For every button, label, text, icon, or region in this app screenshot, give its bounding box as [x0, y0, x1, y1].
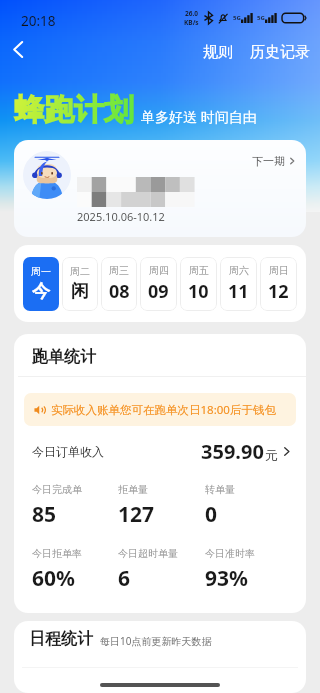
- staticText: KB/s: [184, 18, 199, 27]
- staticText: 拒单量: [118, 483, 148, 496]
- button[interactable]: 2025.10.06-10.12: [14, 140, 306, 237]
- button[interactable]: 历史记录: [246, 38, 314, 67]
- button[interactable]: 今日订单收入: [14, 435, 306, 468]
- staticText: 转单量: [205, 483, 235, 496]
- staticText: 5G: [233, 14, 241, 22]
- button[interactable]: 周五: [180, 257, 217, 311]
- staticText: 周六: [229, 264, 249, 277]
- button[interactable]: 下一期: [248, 150, 300, 172]
- staticText: 今日订单收入: [32, 444, 104, 459]
- staticText: 2025.10.06-10.12: [77, 209, 165, 224]
- button[interactable]: Back: [2, 33, 34, 65]
- staticText: 93%: [205, 564, 248, 593]
- staticText: 单多好送 时间自由: [141, 107, 257, 126]
- staticText: 闲: [71, 280, 89, 303]
- staticText: 日程统计: [29, 629, 93, 649]
- staticText: 每日10点前更新昨天数据: [100, 634, 212, 648]
- staticText: 今日完成单: [32, 483, 82, 496]
- staticText: 蜂跑计划: [14, 91, 134, 129]
- staticText: 周一: [31, 265, 51, 278]
- staticText: 周三: [109, 264, 129, 277]
- staticText: 今日准时率: [205, 547, 255, 560]
- staticText: 85: [32, 500, 57, 529]
- staticText: 实际收入账单您可在跑单次日18:00后于钱包: [51, 402, 276, 418]
- staticText: 周日: [269, 264, 289, 277]
- staticText: 60%: [32, 564, 75, 593]
- button[interactable]: 周二: [62, 257, 98, 311]
- staticText: 08: [109, 279, 130, 304]
- staticText: 今日拒单率: [32, 547, 82, 560]
- staticText: 20:18: [21, 12, 56, 30]
- button[interactable]: 周日: [260, 257, 297, 311]
- staticText: 6: [118, 564, 131, 593]
- staticText: 今日超时单量: [118, 547, 178, 560]
- staticText: 12: [268, 279, 289, 304]
- staticText: 元: [265, 447, 278, 463]
- staticText: 359.90: [201, 438, 264, 465]
- staticText: 127: [118, 500, 155, 529]
- staticText: 历史记录: [250, 43, 310, 62]
- staticText: 周二: [70, 265, 90, 278]
- staticText: 10: [188, 279, 209, 304]
- staticText: 26.0: [185, 9, 198, 18]
- staticText: 今: [32, 280, 50, 303]
- staticText: 规则: [203, 43, 233, 62]
- staticText: 5G: [257, 14, 265, 22]
- staticText: 0: [205, 500, 218, 529]
- button[interactable]: 周一: [23, 257, 59, 311]
- button[interactable]: 周六: [220, 257, 257, 311]
- staticText: 周四: [149, 264, 169, 277]
- staticText: 下一期: [252, 154, 285, 168]
- staticText: 跑单统计: [32, 347, 96, 367]
- button[interactable]: 规则: [197, 38, 239, 67]
- button[interactable]: 周三: [101, 257, 137, 311]
- staticText: 09: [148, 279, 169, 304]
- staticText: 11: [228, 279, 249, 304]
- staticText: 周五: [189, 264, 209, 277]
- button[interactable]: 周四: [140, 257, 177, 311]
